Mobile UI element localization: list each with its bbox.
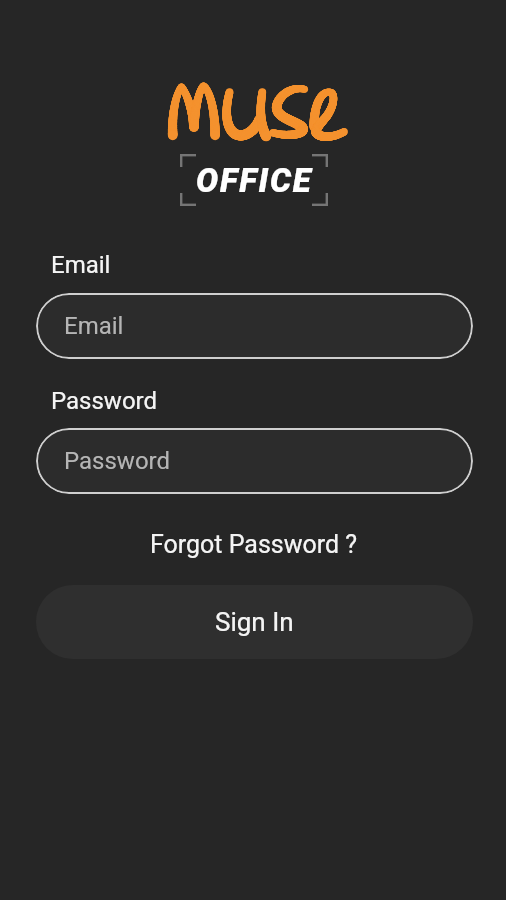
staticText: Sign In — [215, 607, 294, 637]
button[interactable]: Password — [36, 428, 473, 494]
other: Muse Office logo — [166, 81, 349, 140]
button[interactable]: Forgot Password ? — [140, 524, 368, 565]
staticText: Forgot Password ? — [150, 530, 358, 559]
staticText: Email — [51, 251, 111, 279]
staticText: Email — [64, 312, 124, 340]
button[interactable]: Email — [36, 293, 473, 359]
staticText: Password — [51, 387, 158, 415]
button[interactable]: Sign In — [36, 585, 473, 659]
staticText: Password — [64, 447, 171, 475]
staticText: OFFICE — [196, 161, 313, 200]
